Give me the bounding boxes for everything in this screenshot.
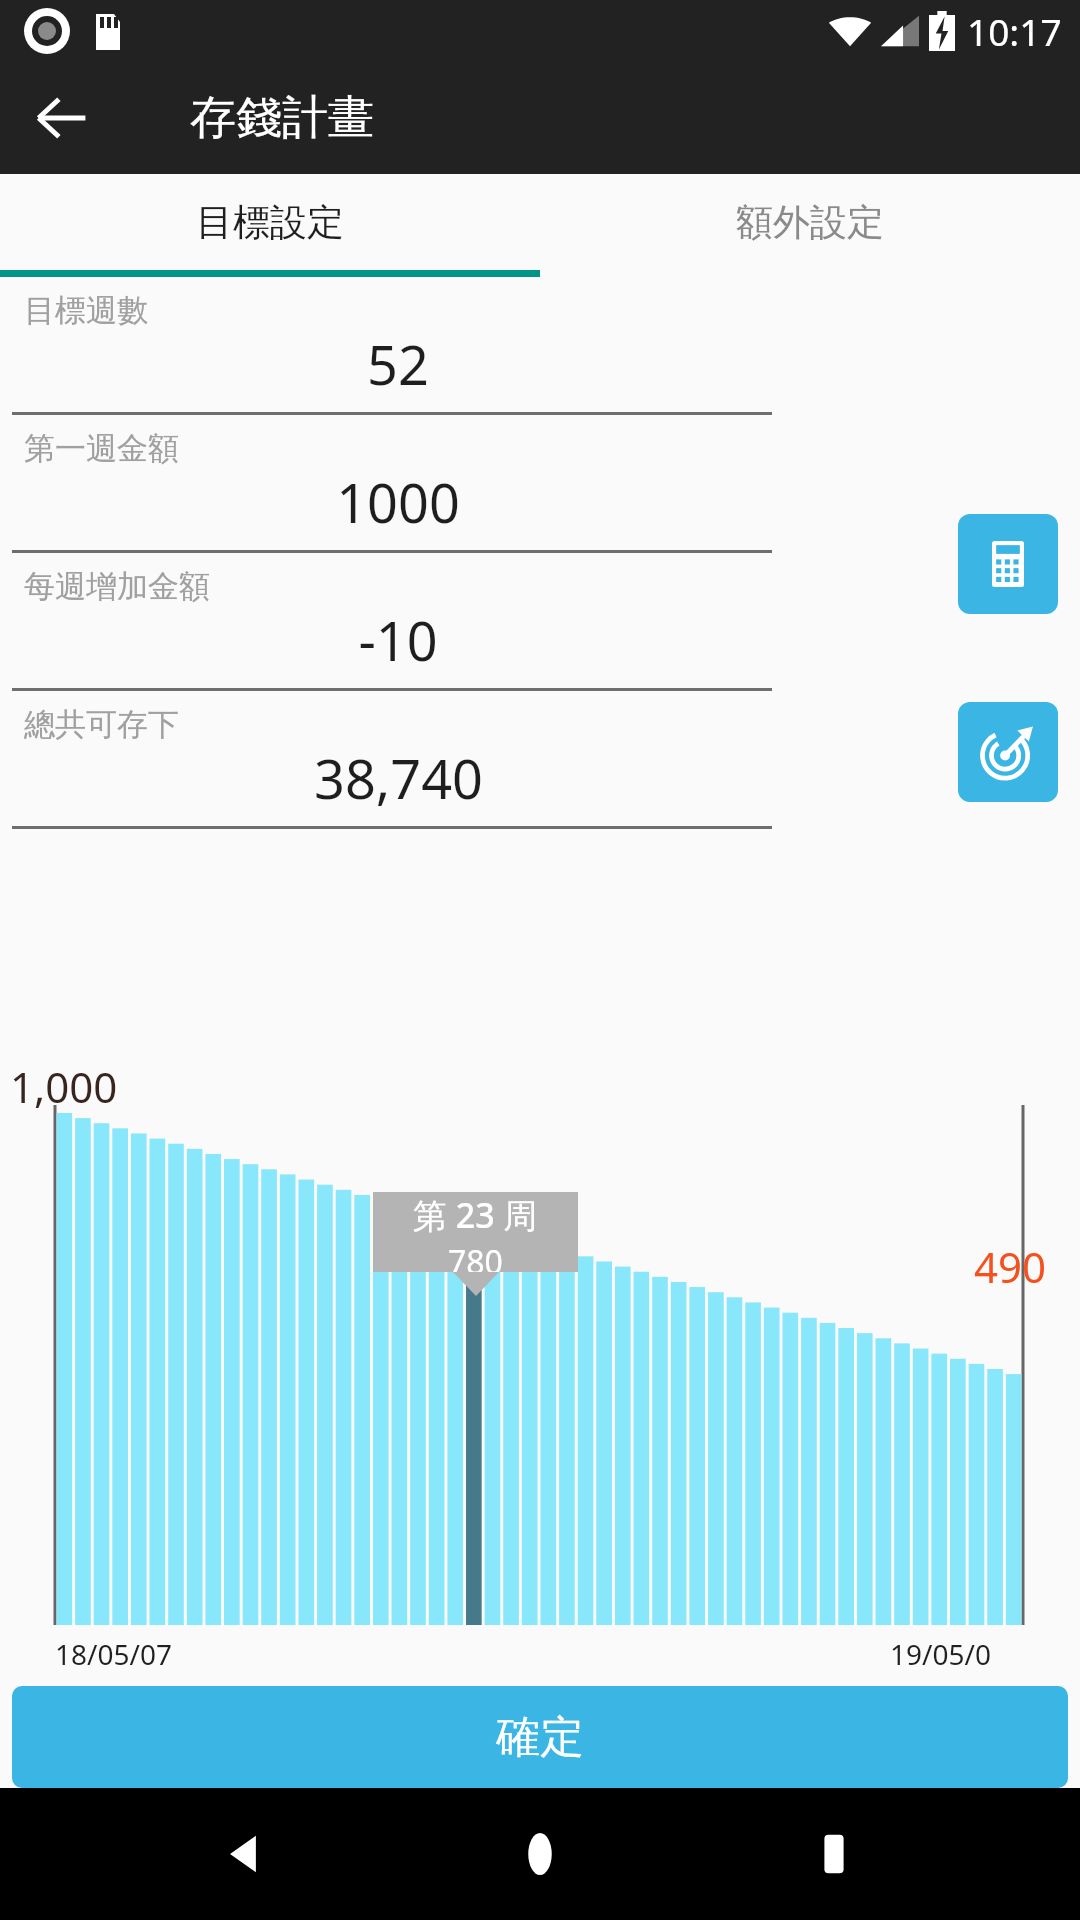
staticText: 38,740 [314, 741, 483, 815]
staticText: 18/05/07 [55, 1635, 172, 1673]
button[interactable]: 52 [24, 281, 772, 419]
button[interactable]: Home [492, 1806, 588, 1902]
button[interactable]: 38,740 [24, 695, 772, 833]
staticText: 1000 [336, 465, 460, 539]
staticText: 19/05/0 [890, 1635, 991, 1673]
button[interactable]: Recents [786, 1806, 882, 1902]
staticText: 總共可存下 [24, 705, 179, 744]
button[interactable]: Calculator [958, 514, 1058, 614]
staticText: 1,000 [10, 1058, 118, 1115]
staticText: -10 [358, 603, 438, 677]
staticText: 第 23 周 [413, 1192, 538, 1238]
staticText: 10:17 [967, 6, 1062, 56]
staticText: 確定 [496, 1710, 584, 1765]
staticText: 存錢計畫 [190, 89, 374, 147]
staticText: 780 [448, 1240, 503, 1272]
button[interactable]: Back [198, 1806, 294, 1902]
staticText: 目標設定 [196, 199, 344, 246]
button[interactable]: 額外設定 [540, 174, 1080, 270]
button[interactable]: -10 [24, 557, 772, 695]
staticText: 額外設定 [736, 199, 884, 246]
staticText: 52 [367, 327, 429, 401]
button[interactable]: 確定 [12, 1686, 1068, 1788]
button[interactable]: 1000 [24, 419, 772, 557]
staticText: 第一週金額 [24, 429, 179, 468]
button[interactable]: 目標設定 [0, 174, 540, 270]
button[interactable]: Set goal [958, 702, 1058, 802]
staticText: 490 [974, 1238, 1047, 1295]
staticText: 每週增加金額 [24, 567, 210, 606]
staticText: 目標週數 [24, 291, 148, 330]
button[interactable]: Back [24, 80, 100, 156]
